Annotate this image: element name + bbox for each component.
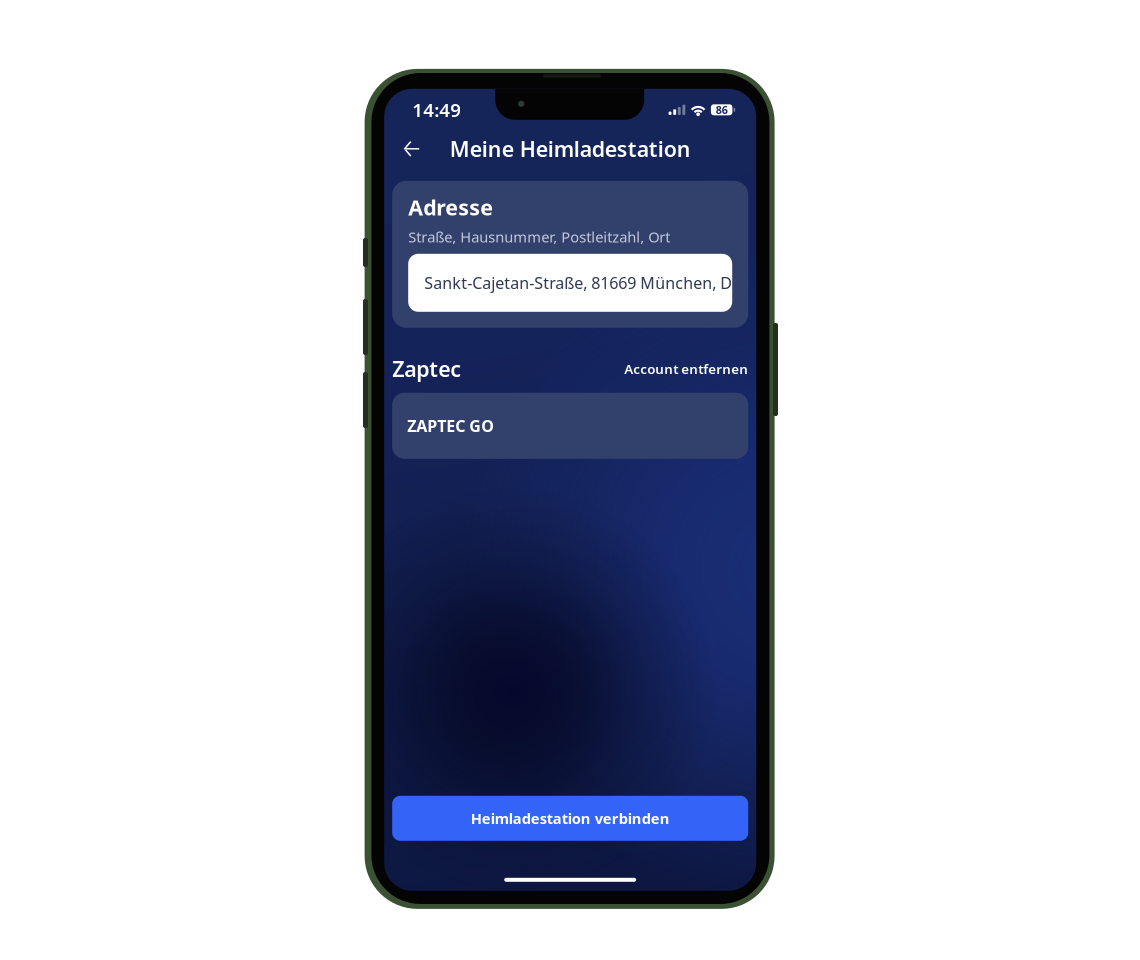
- staticText: 86: [716, 103, 728, 117]
- staticText: Heimladestation verbinden: [471, 809, 670, 828]
- staticText: Zaptec: [392, 355, 461, 383]
- staticText: ZAPTEC GO: [407, 415, 494, 436]
- button[interactable]: ZAPTEC GO: [392, 393, 748, 459]
- staticText: 14:49: [412, 97, 461, 122]
- staticText: Sankt-Cajetan-Straße, 81669 München, Deu…: [424, 272, 816, 293]
- button[interactable]: Account entfernen: [624, 360, 748, 378]
- button[interactable]: Heimladestation verbinden: [392, 796, 748, 841]
- staticText: Adresse: [408, 193, 493, 221]
- staticText: Account entfernen: [624, 360, 748, 378]
- staticText: Meine Heimladestation: [450, 135, 691, 163]
- button[interactable]: Back: [395, 136, 427, 168]
- staticText: Straße, Hausnummer, Postleitzahl, Ort: [408, 227, 670, 247]
